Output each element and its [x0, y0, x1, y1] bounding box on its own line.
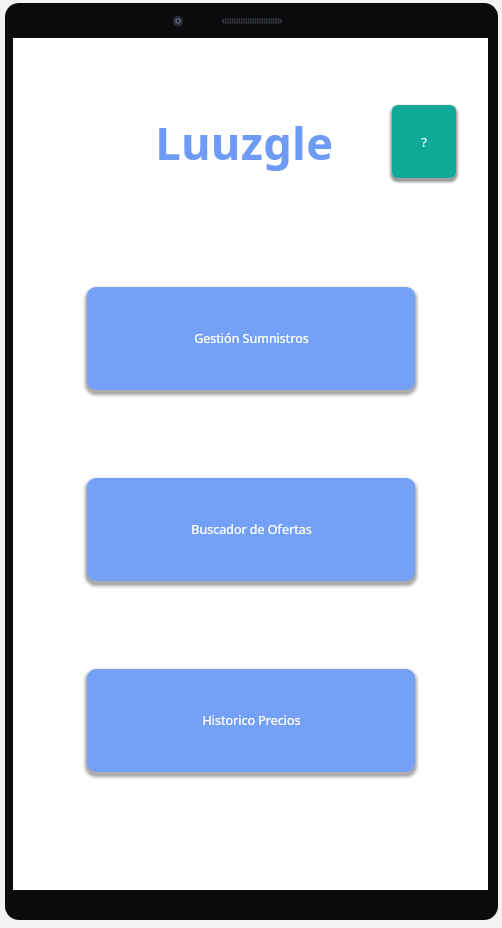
staticText: Luuzgle: [155, 112, 334, 173]
staticText: Historico Precios: [202, 712, 301, 729]
button[interactable]: Gestión Sumnistros: [87, 287, 415, 390]
button[interactable]: Buscador de Ofertas: [87, 478, 415, 581]
button[interactable]: Ayuda: [392, 105, 456, 178]
staticText: ?: [421, 133, 427, 151]
staticText: Gestión Sumnistros: [194, 330, 309, 347]
button[interactable]: Historico Precios: [87, 669, 415, 772]
staticText: Buscador de Ofertas: [191, 521, 312, 538]
